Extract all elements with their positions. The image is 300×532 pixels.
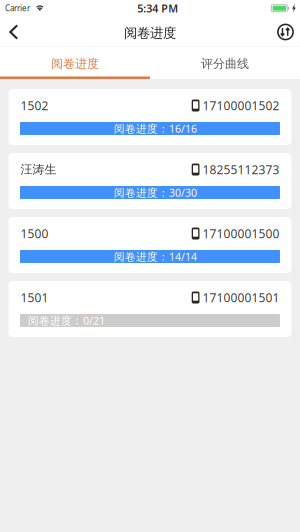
button[interactable]: Back [0, 20, 37, 47]
button[interactable]: 1500 [8, 217, 291, 273]
staticText: 汪涛生 [20, 162, 56, 177]
staticText: 阅卷进度：30/30 [114, 185, 197, 200]
staticText: 17100001501 [199, 289, 279, 305]
button[interactable]: 1501 [8, 281, 291, 337]
staticText: 1502 [20, 97, 48, 113]
staticText: 1500 [20, 225, 48, 241]
staticText: 阅卷进度：14/14 [114, 249, 197, 264]
button[interactable]: Sort order [271, 20, 300, 47]
staticText: 阅卷进度：0/21 [28, 313, 105, 328]
staticText: 17100001500 [199, 225, 279, 241]
staticText: Carrier [5, 3, 30, 13]
staticText: 阅卷进度：16/16 [114, 121, 197, 136]
staticText: 5:34 PM [137, 1, 178, 15]
staticText: 18255112373 [199, 161, 279, 177]
staticText: 阅卷进度 [124, 25, 176, 41]
button[interactable]: 阅卷进度 [0, 47, 150, 79]
button[interactable]: 评分曲线 [150, 47, 300, 79]
button[interactable]: 1502 [8, 89, 291, 145]
staticText: 阅卷进度 [51, 56, 99, 71]
staticText: 17100001502 [199, 97, 279, 113]
staticText: 1501 [20, 289, 48, 305]
staticText: 评分曲线 [201, 56, 249, 71]
button[interactable]: 汪涛生 [8, 153, 291, 209]
